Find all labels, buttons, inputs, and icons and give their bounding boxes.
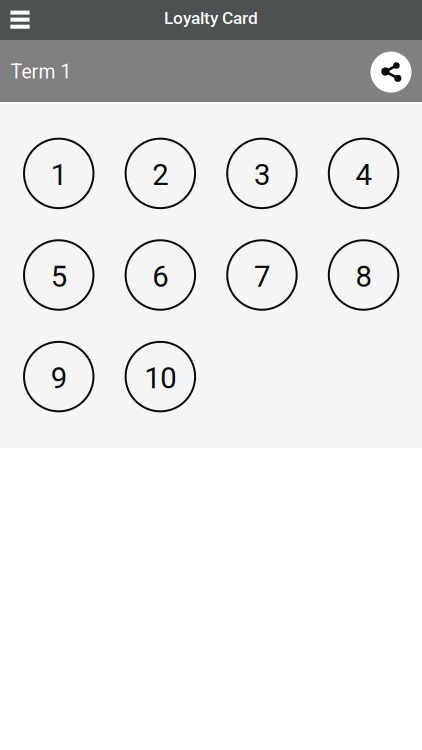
staticText: 1 — [51, 158, 67, 192]
button[interactable]: 6 — [125, 239, 196, 311]
staticText: 3 — [254, 158, 270, 192]
staticText: 8 — [355, 259, 371, 294]
staticText: 7 — [254, 259, 270, 294]
button[interactable]: 8 — [328, 239, 399, 311]
button[interactable]: 4 — [328, 138, 399, 209]
button[interactable]: Share — [370, 52, 411, 93]
staticText: 2 — [152, 158, 168, 192]
button[interactable]: 9 — [23, 341, 94, 412]
staticText: Loyalty Card — [164, 8, 258, 28]
button[interactable]: 10 — [125, 341, 196, 412]
staticText: 9 — [51, 361, 67, 395]
button[interactable]: 5 — [23, 239, 94, 311]
button[interactable]: 7 — [226, 239, 298, 311]
button[interactable]: 1 — [23, 138, 94, 209]
staticText: 6 — [152, 259, 168, 294]
staticText: 10 — [144, 361, 176, 395]
button[interactable]: 2 — [125, 138, 196, 209]
button[interactable]: Menu — [0, 0, 40, 40]
staticText: 5 — [51, 259, 67, 294]
button[interactable]: 3 — [226, 138, 298, 209]
staticText: Term 1 — [11, 61, 72, 83]
staticText: 4 — [355, 158, 371, 192]
